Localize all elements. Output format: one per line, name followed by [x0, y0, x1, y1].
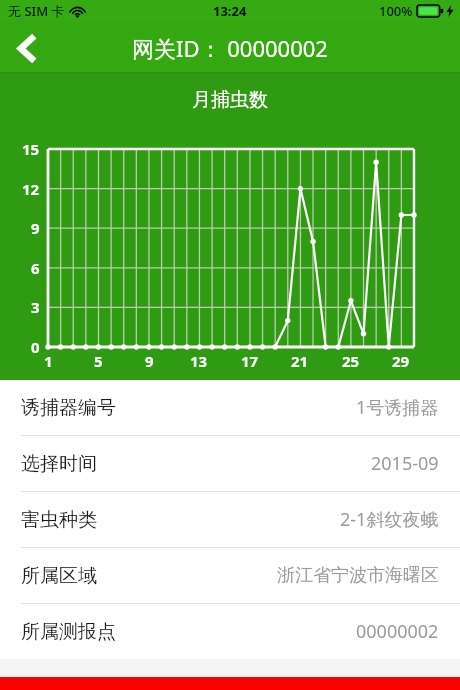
staticText: 9	[145, 351, 154, 371]
staticText: 13:24	[213, 2, 247, 20]
staticText: 1	[44, 351, 53, 371]
staticText: 1号诱捕器	[356, 395, 439, 420]
staticText: 所属测报点	[21, 620, 116, 644]
staticText: 21	[291, 351, 309, 371]
staticText: 0	[31, 337, 40, 357]
staticText: 诱捕器编号	[21, 396, 116, 420]
button[interactable]: 选择时间	[0, 436, 460, 491]
staticText: 2015-09	[371, 451, 439, 476]
staticText: 所属区域	[21, 564, 97, 588]
staticText: 3	[31, 297, 40, 317]
staticText: 13	[190, 351, 208, 371]
button[interactable]: 诱捕器编号	[0, 380, 460, 435]
staticText: 5	[94, 351, 103, 371]
staticText: 00000002	[356, 619, 439, 644]
button[interactable]: 害虫种类	[0, 492, 460, 547]
staticText: 月捕虫数	[192, 88, 268, 112]
button[interactable]: 所属测报点	[0, 604, 460, 659]
staticText: 网关ID： 00000002	[132, 33, 328, 63]
staticText: 无 SIM 卡	[8, 2, 65, 20]
button[interactable]: Back	[0, 22, 54, 74]
staticText: 9	[31, 218, 40, 238]
staticText: 选择时间	[21, 452, 97, 476]
staticText: 100%	[379, 2, 413, 20]
staticText: 6	[31, 258, 40, 278]
staticText: 害虫种类	[21, 508, 97, 532]
staticText: 12	[22, 179, 40, 199]
staticText: 浙江省宁波市海曙区	[277, 564, 439, 587]
button[interactable]: 所属区域	[0, 548, 460, 603]
staticText: 15	[22, 139, 40, 159]
staticText: 29	[392, 351, 410, 371]
staticText: 17	[241, 351, 259, 371]
staticText: 25	[342, 351, 360, 371]
staticText: 2-1斜纹夜蛾	[340, 507, 439, 532]
